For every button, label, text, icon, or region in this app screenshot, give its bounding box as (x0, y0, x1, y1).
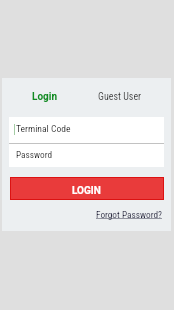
staticText: Password (16, 149, 53, 160)
staticText: Terminal Code (16, 123, 71, 134)
button[interactable]: Terminal Code (9, 117, 164, 143)
staticText: Login (32, 91, 58, 103)
button[interactable]: Password (9, 144, 164, 167)
button[interactable]: Forgot Password? (96, 205, 162, 223)
staticText: Forgot Password? (96, 209, 162, 220)
button[interactable]: Login (11, 84, 78, 110)
staticText: Guest User (98, 91, 142, 103)
button[interactable]: Guest User (86, 84, 153, 110)
button[interactable]: LOGIN (11, 178, 163, 199)
staticText: LOGIN (72, 185, 101, 197)
